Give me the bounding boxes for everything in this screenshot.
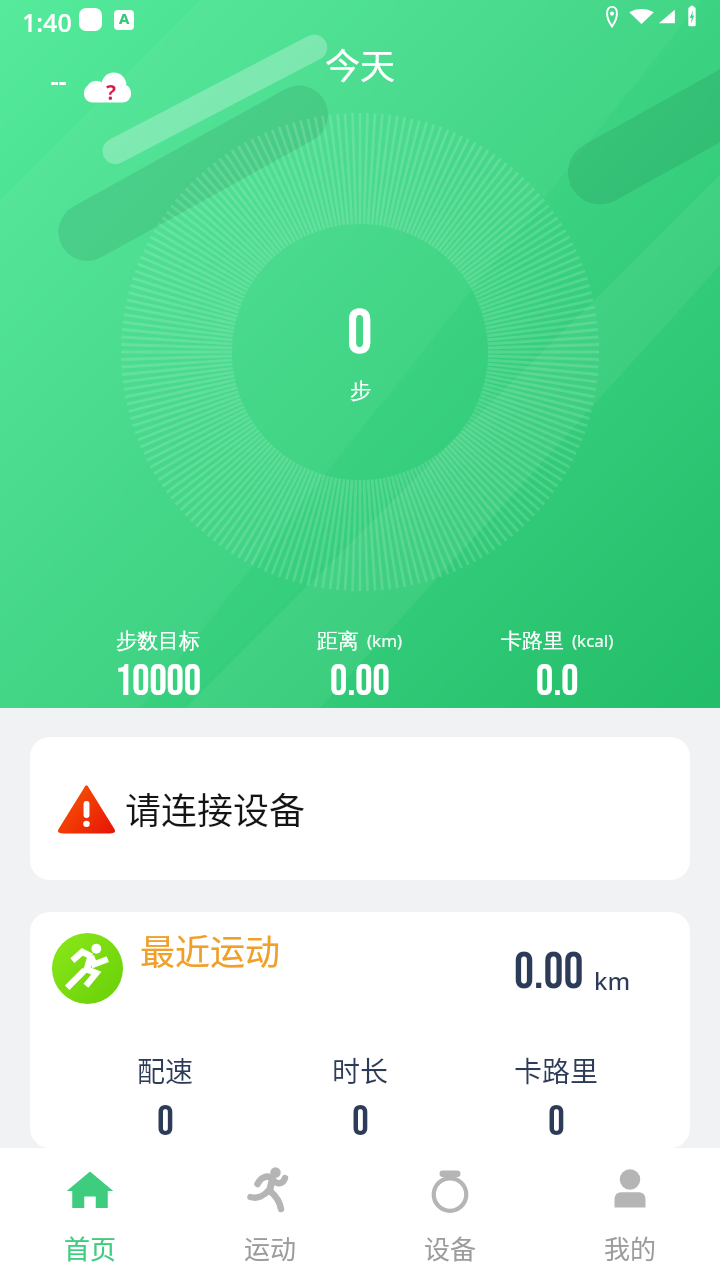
staticText: 距离 [317, 628, 359, 654]
staticText: A [119, 10, 130, 28]
staticText: 0 [352, 1097, 369, 1147]
staticText: 0 [548, 1097, 565, 1147]
staticText: 步数目标 [116, 628, 200, 654]
button[interactable]: Profile [540, 1148, 720, 1280]
staticText: 今天 [325, 38, 396, 89]
staticText: 10000 [115, 656, 201, 708]
staticText: 请连接设备 [125, 782, 306, 834]
staticText: 运动 [244, 1229, 297, 1267]
staticText: 步 [350, 378, 371, 404]
staticText: 0.00 [514, 943, 584, 1003]
staticText: 0 [157, 1097, 174, 1147]
button[interactable]: 最近运动 [30, 912, 690, 1148]
staticText: (km) [367, 629, 403, 652]
staticText: 配速 [137, 1050, 194, 1091]
button[interactable]: Home [0, 1148, 180, 1280]
other: Exercise [245, 1165, 295, 1215]
staticText: 0.0 [536, 656, 579, 708]
staticText: 卡路里 [501, 628, 564, 654]
other: Home [65, 1165, 115, 1215]
staticText: 0 [347, 296, 373, 372]
staticText: 1:40 [22, 5, 72, 39]
staticText: 最近运动 [140, 924, 281, 975]
other: Profile [605, 1165, 655, 1215]
staticText: 设备 [424, 1229, 477, 1267]
staticText: ? [106, 78, 117, 107]
other: Device [425, 1165, 475, 1215]
staticText: -- [51, 64, 67, 97]
staticText: 卡路里 [514, 1050, 599, 1091]
staticText: 时长 [332, 1050, 389, 1091]
button[interactable]: Exercise [180, 1148, 360, 1280]
button[interactable]: Device [360, 1148, 540, 1280]
staticText: 我的 [604, 1229, 657, 1267]
staticText: km [594, 964, 631, 997]
button[interactable]: 请连接设备 [30, 737, 690, 880]
staticText: 首页 [64, 1229, 117, 1267]
staticText: 0.00 [330, 656, 390, 708]
staticText: (kcal) [572, 629, 614, 652]
